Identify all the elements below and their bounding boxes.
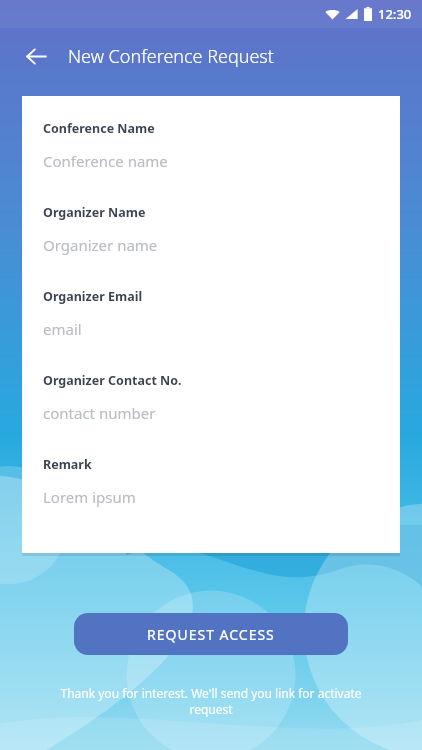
button[interactable]: REQUEST ACCESS: [74, 613, 348, 655]
staticText: Organizer Contact No.: [43, 372, 182, 389]
button[interactable]: Back: [14, 34, 58, 78]
staticText: Lorem ipsum: [43, 487, 136, 507]
staticText: Organizer Email: [43, 288, 143, 305]
button[interactable]: Organizer Name: [43, 204, 379, 255]
staticText: Remark: [43, 456, 92, 473]
button[interactable]: Conference Name: [43, 120, 379, 171]
staticText: Conference name: [43, 151, 168, 171]
staticText: Organizer Name: [43, 204, 146, 221]
staticText: Conference Name: [43, 120, 155, 137]
staticText: Thank you for interest. We'll send you l…: [60, 685, 362, 718]
staticText: 12:30: [378, 5, 412, 23]
staticText: New Conference Request: [68, 44, 274, 69]
button[interactable]: Organizer Email: [43, 288, 379, 339]
staticText: REQUEST ACCESS: [147, 625, 275, 644]
staticText: contact number: [43, 403, 156, 423]
staticText: Organizer name: [43, 235, 158, 255]
button[interactable]: Organizer Contact No.: [43, 372, 379, 423]
button[interactable]: Remark: [43, 456, 379, 507]
staticText: email: [43, 319, 82, 339]
